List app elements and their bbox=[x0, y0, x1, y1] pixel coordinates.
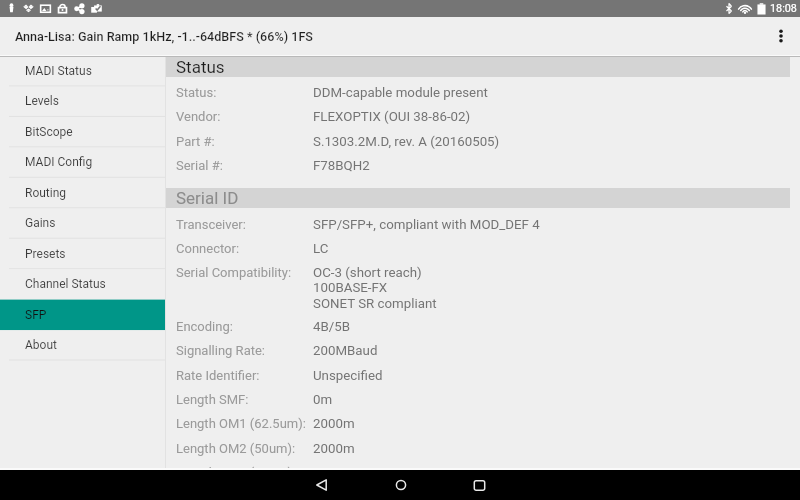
button[interactable]: Channel Status bbox=[0, 269, 165, 299]
staticText: F78BQH2 bbox=[313, 158, 370, 174]
staticText: Length OM1 (62.5um): bbox=[176, 416, 306, 431]
button[interactable]: MADI Status bbox=[0, 56, 165, 86]
button[interactable]: MADI Config bbox=[0, 147, 165, 177]
staticText: MADI Status bbox=[25, 64, 92, 78]
staticText: LC bbox=[313, 241, 329, 257]
button[interactable]: Recent apps bbox=[440, 470, 519, 500]
staticText: SONET SR compliant bbox=[313, 296, 437, 312]
staticText: DDM-capable module present bbox=[313, 85, 488, 101]
staticText: Transceiver: bbox=[176, 217, 246, 232]
staticText: 18:08 bbox=[770, 2, 797, 15]
staticText: Serial Compatibility: bbox=[176, 265, 292, 280]
staticText: Vendor: bbox=[176, 109, 221, 124]
button[interactable]: Routing bbox=[0, 178, 165, 208]
staticText: 100BASE-FX bbox=[313, 280, 388, 296]
button[interactable]: Home bbox=[361, 470, 440, 500]
button[interactable]: Levels bbox=[0, 86, 165, 116]
staticText: Connector: bbox=[176, 241, 240, 256]
staticText: 0m bbox=[313, 392, 333, 408]
staticText: FLEXOPTIX (OUI 38-86-02) bbox=[313, 109, 471, 125]
staticText: Length SMF: bbox=[176, 392, 249, 407]
staticText: Levels bbox=[25, 94, 59, 108]
button[interactable]: SFP bbox=[0, 300, 165, 330]
staticText: Unspecified bbox=[313, 368, 383, 384]
button[interactable]: BitScope bbox=[0, 117, 165, 147]
staticText: Serial ID bbox=[176, 188, 239, 208]
button[interactable]: About bbox=[0, 330, 165, 360]
staticText: Status: bbox=[176, 85, 217, 100]
staticText: Routing bbox=[25, 186, 67, 200]
staticText: Gains bbox=[25, 216, 56, 230]
staticText: Length OM2 (50um): bbox=[176, 441, 296, 456]
staticText: BitScope bbox=[25, 125, 73, 139]
button[interactable]: More options bbox=[761, 17, 800, 55]
staticText: SFP bbox=[25, 308, 47, 322]
button[interactable]: Presets bbox=[0, 239, 165, 269]
staticText: Serial #: bbox=[176, 158, 223, 173]
staticText: Length OM3 (50um): bbox=[176, 465, 296, 468]
staticText: 2000m bbox=[313, 441, 355, 457]
staticText: Rate Identifier: bbox=[176, 368, 260, 383]
staticText: 200MBaud bbox=[313, 343, 378, 359]
staticText: Encoding: bbox=[176, 319, 233, 334]
staticText: Presets bbox=[25, 247, 66, 261]
staticText: S.1303.2M.D, rev. A (20160505) bbox=[313, 134, 500, 150]
staticText: About bbox=[25, 338, 57, 352]
staticText: 2000m bbox=[313, 416, 355, 432]
button[interactable]: Gains bbox=[0, 208, 165, 238]
staticText: Channel Status bbox=[25, 277, 106, 291]
staticText: 4B/5B bbox=[313, 319, 351, 335]
staticText: Status bbox=[176, 57, 225, 77]
staticText: OC-3 (short reach) bbox=[313, 265, 422, 281]
staticText: Signalling Rate: bbox=[176, 343, 265, 358]
staticText: Part #: bbox=[176, 134, 215, 149]
staticText: SFP/SFP+, compliant with MOD_DEF 4 bbox=[313, 217, 540, 233]
button[interactable]: Back bbox=[282, 470, 361, 500]
staticText: Anna-Lisa: Gain Ramp 1kHz, -1..-64dBFS *… bbox=[15, 29, 313, 44]
staticText: MADI Config bbox=[25, 155, 93, 169]
